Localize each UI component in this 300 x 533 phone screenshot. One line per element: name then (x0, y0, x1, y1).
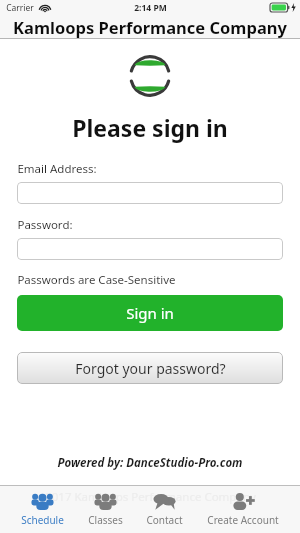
button[interactable] (17, 182, 283, 204)
button[interactable]: Create Account (205, 486, 281, 533)
staticText: Please sign in (72, 112, 228, 143)
button[interactable]: People (86, 486, 125, 533)
staticText: Kamloops Performance Company (13, 16, 287, 38)
staticText: Sign in (126, 303, 174, 323)
staticText: Forgot your password? (75, 359, 226, 378)
staticText: Password: (17, 217, 73, 233)
staticText: 2017 Kamloops Performance Company (45, 489, 256, 505)
button[interactable]: Forgot your password? (17, 352, 283, 384)
staticText: Carrier (6, 2, 34, 14)
button[interactable]: Sign in (17, 295, 283, 331)
staticText: Contact (146, 513, 183, 527)
staticText: Classes (88, 513, 123, 527)
staticText: Passwords are Case-Sensitive (17, 272, 176, 288)
other: Contact (153, 493, 176, 510)
staticText: Powered by: DanceStudio-Pro.com (57, 455, 243, 471)
button[interactable]: Contact (144, 486, 185, 533)
staticText: 2:14 PM (134, 2, 167, 14)
button[interactable]: People (19, 486, 66, 533)
other: Create Account (232, 493, 255, 510)
button[interactable] (17, 238, 283, 260)
other: People (94, 493, 117, 510)
staticText: Schedule (21, 513, 64, 527)
staticText: Email Address: (17, 161, 97, 177)
staticText: Create Account (207, 513, 279, 527)
other: People (31, 493, 54, 510)
